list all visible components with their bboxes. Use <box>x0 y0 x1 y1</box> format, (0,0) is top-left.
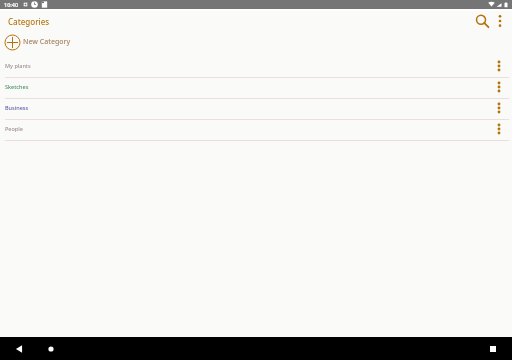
button[interactable]: Search <box>473 12 491 30</box>
button[interactable]: Business <box>0 99 512 120</box>
button[interactable]: People <box>0 120 512 141</box>
staticText: New Category <box>23 37 71 47</box>
button[interactable]: Options for Sketches <box>489 77 509 97</box>
staticText: Sketches <box>5 83 29 90</box>
staticText: People <box>5 125 23 132</box>
staticText: Business <box>5 104 29 111</box>
staticText: My plants <box>5 62 31 69</box>
staticText: Categories <box>8 16 50 27</box>
button[interactable]: New Category <box>0 31 512 53</box>
button[interactable]: Options for People <box>489 119 509 139</box>
button[interactable]: More options <box>491 12 509 30</box>
button[interactable]: Back <box>11 341 26 356</box>
button[interactable]: My plants <box>0 57 512 78</box>
button[interactable]: Home <box>43 341 59 357</box>
button[interactable]: Options for My plants <box>489 56 509 76</box>
button[interactable]: Sketches <box>0 78 512 99</box>
staticText: 10:40 <box>4 1 19 8</box>
button[interactable]: Options for Business <box>489 98 509 118</box>
button[interactable]: Recents <box>485 341 501 357</box>
